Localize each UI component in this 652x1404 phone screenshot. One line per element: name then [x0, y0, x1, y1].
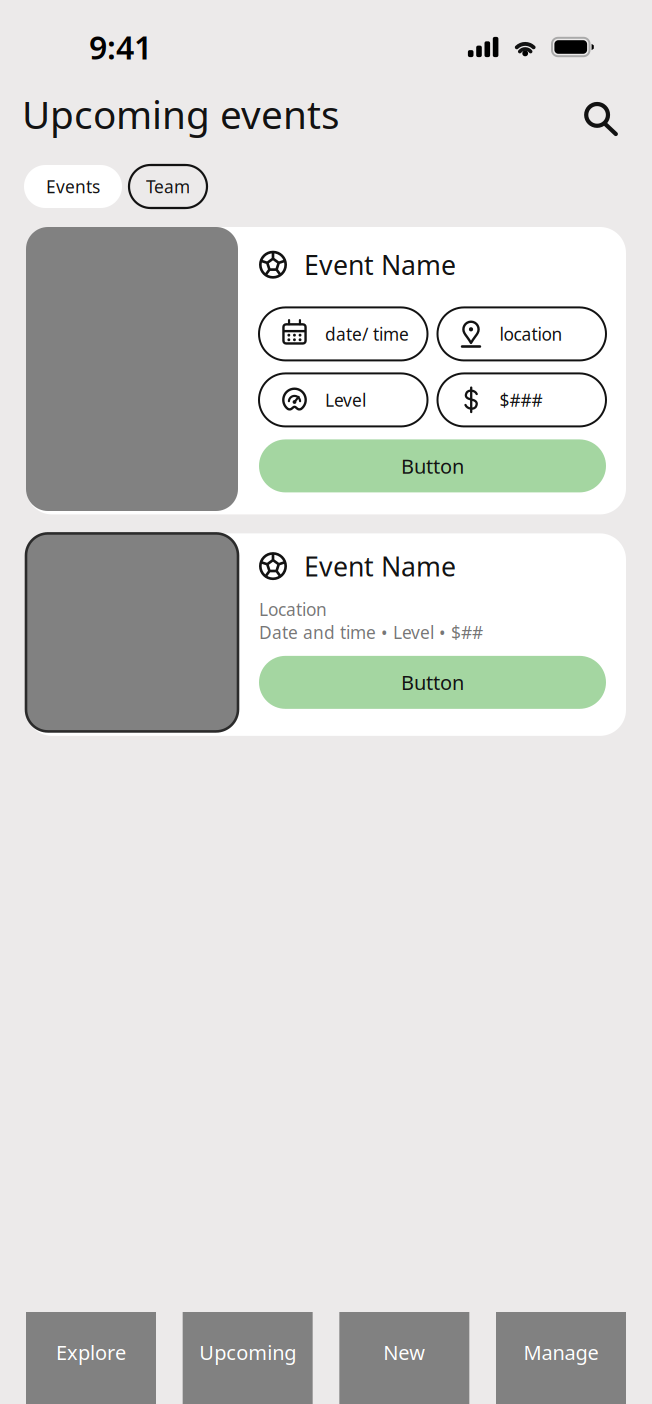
staticText: 9:41 [89, 26, 152, 68]
button[interactable]: location [437, 307, 606, 360]
button[interactable]: Team [129, 165, 207, 208]
button[interactable]: Button [259, 439, 606, 492]
button[interactable]: $### [437, 373, 606, 426]
staticText: Event Name [304, 247, 456, 282]
button[interactable]: New [339, 1312, 469, 1404]
staticText: Button [401, 669, 464, 696]
button[interactable]: Explore [26, 1312, 156, 1404]
staticText: Event Name [304, 548, 456, 584]
staticText: Team [146, 175, 190, 198]
staticText: $### [499, 388, 542, 411]
staticText: Location [259, 598, 327, 621]
button[interactable]: Level [259, 373, 427, 426]
button[interactable]: Upcoming [183, 1312, 313, 1404]
staticText: date/ time [325, 322, 409, 345]
staticText: New [383, 1339, 425, 1366]
button[interactable]: Search [584, 91, 625, 136]
staticText: location [499, 322, 562, 345]
staticText: Upcoming [199, 1339, 296, 1366]
staticText: Upcoming events [22, 88, 340, 140]
staticText: Manage [523, 1339, 598, 1366]
staticText: Button [401, 453, 464, 479]
button[interactable]: Events [24, 165, 122, 208]
staticText: Date and time • Level • $## [259, 621, 483, 644]
button[interactable]: Button [259, 656, 606, 709]
staticText: Level [325, 388, 366, 411]
staticText: Explore [56, 1339, 126, 1366]
button[interactable]: date/ time [259, 307, 427, 360]
button[interactable]: Manage [496, 1312, 626, 1404]
staticText: Events [46, 175, 100, 198]
